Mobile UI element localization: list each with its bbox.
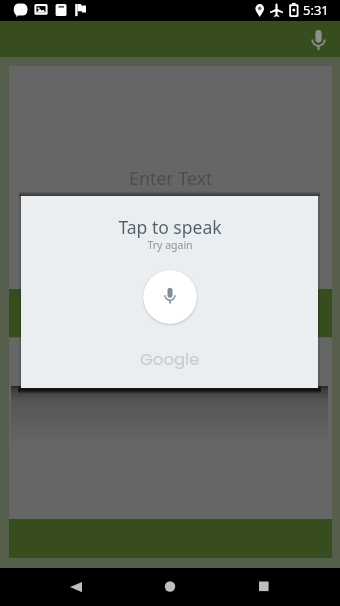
button[interactable]: Voice search [303, 25, 333, 55]
staticText: Tap to speak [118, 215, 222, 239]
button[interactable] [9, 289, 332, 337]
button[interactable]: Back [56, 568, 96, 606]
button[interactable] [9, 338, 332, 519]
staticText: Enter Text [129, 166, 213, 190]
staticText: 5:31 [303, 1, 329, 19]
button[interactable]: Tap to speak [143, 270, 197, 324]
button[interactable]: Home [150, 568, 190, 606]
button[interactable]: Recent apps [244, 568, 284, 606]
staticText: Google [140, 348, 200, 371]
button[interactable]: Enter Text [9, 66, 332, 289]
staticText: Try again [147, 238, 193, 252]
